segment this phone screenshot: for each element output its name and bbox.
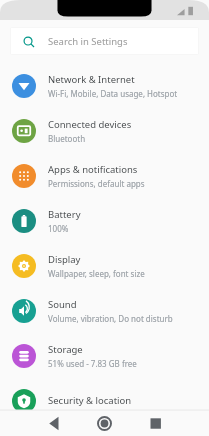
button[interactable]: Display	[0, 243, 209, 288]
staticText: 51% used - 7.83 GB free	[48, 358, 137, 369]
button[interactable]: Apps & notifications	[0, 153, 209, 198]
button[interactable]: Network & Internet	[0, 63, 209, 108]
staticText: Volume, vibration, Do not disturb	[48, 313, 173, 324]
staticText: Network & Internet	[48, 73, 135, 86]
staticText: Search in Settings	[48, 35, 128, 48]
button[interactable]: Battery	[0, 198, 209, 243]
staticText: Wallpaper, sleep, font size	[48, 268, 145, 279]
button[interactable]: Back	[0, 410, 69, 436]
staticText: Connected devices	[48, 118, 132, 131]
button[interactable]: Sound	[0, 288, 209, 333]
staticText: Wi-Fi, Mobile, Data usage, Hotspot	[48, 88, 178, 99]
staticText: Battery	[48, 208, 81, 221]
button[interactable]: Storage	[0, 333, 209, 378]
button[interactable]: Recent apps	[139, 410, 209, 436]
staticText: Display	[48, 253, 81, 266]
button[interactable]: Connected devices	[0, 108, 209, 153]
staticText: Security & location	[48, 394, 132, 407]
staticText: Apps & notifications	[48, 163, 138, 176]
button[interactable]: Home	[69, 410, 139, 436]
staticText: Storage	[48, 343, 83, 356]
staticText: Bluetooth	[48, 133, 86, 144]
button[interactable]: Security & location	[0, 378, 209, 423]
button[interactable]: Search in Settings	[10, 27, 199, 55]
staticText: Permissions, default apps	[48, 178, 145, 189]
staticText: 100%	[48, 223, 69, 234]
staticText: Sound	[48, 298, 77, 311]
